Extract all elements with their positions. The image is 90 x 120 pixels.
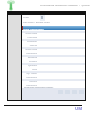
button[interactable]: Required Product: [25, 56, 37, 59]
button[interactable]: Search orders: [40, 15, 45, 21]
button[interactable]: AQL Major: [25, 72, 37, 75]
button[interactable]: Product Name: [25, 60, 37, 63]
button[interactable]: Inspection Location: [25, 76, 37, 79]
staticText: Order Date: [25, 32, 37, 35]
staticText: Total Quantity: [25, 68, 37, 71]
button[interactable]: Factory Contact: [25, 80, 37, 83]
staticText: Customer Contact: [25, 40, 37, 43]
staticText: AQL Major: [26, 72, 37, 75]
staticText: Inspection Date: [25, 84, 37, 87]
staticText: Factory Contact: [25, 80, 37, 83]
staticText: Required Product: [25, 56, 37, 59]
button[interactable]: Customer Contact: [25, 40, 37, 43]
button[interactable]: Purchase Order: [25, 36, 37, 39]
button[interactable]: Quantity: [25, 64, 37, 67]
staticText: Inspection Level: [25, 52, 37, 55]
button[interactable]: Total Quantity: [25, 68, 37, 71]
button[interactable]: [22, 26, 85, 30]
staticText: Inspection Location: [25, 76, 37, 79]
staticText: Order Information: [23, 27, 44, 30]
staticText: Order Type: [25, 48, 37, 51]
staticText: UM: [75, 106, 83, 112]
button[interactable]: Inspection Level: [25, 52, 37, 55]
staticText: Special Instruction: [25, 44, 37, 47]
staticText: Get Order / Review order: [23, 21, 50, 24]
staticText: Cloud Based Inspection Software | Qualit…: [40, 3, 90, 6]
button[interactable]: Special Instruction: [25, 44, 37, 47]
staticText: Order: [23, 16, 30, 19]
button[interactable]: Order Type: [25, 48, 37, 51]
button[interactable]: Order Date: [25, 32, 37, 35]
staticText: Download Inspection Report: [24, 86, 54, 89]
button[interactable]: Inspection Date: [25, 84, 37, 87]
staticText: Purchase Order: [25, 36, 37, 39]
staticText: Quantity: [28, 64, 37, 67]
staticText: Product Name: [25, 60, 37, 63]
